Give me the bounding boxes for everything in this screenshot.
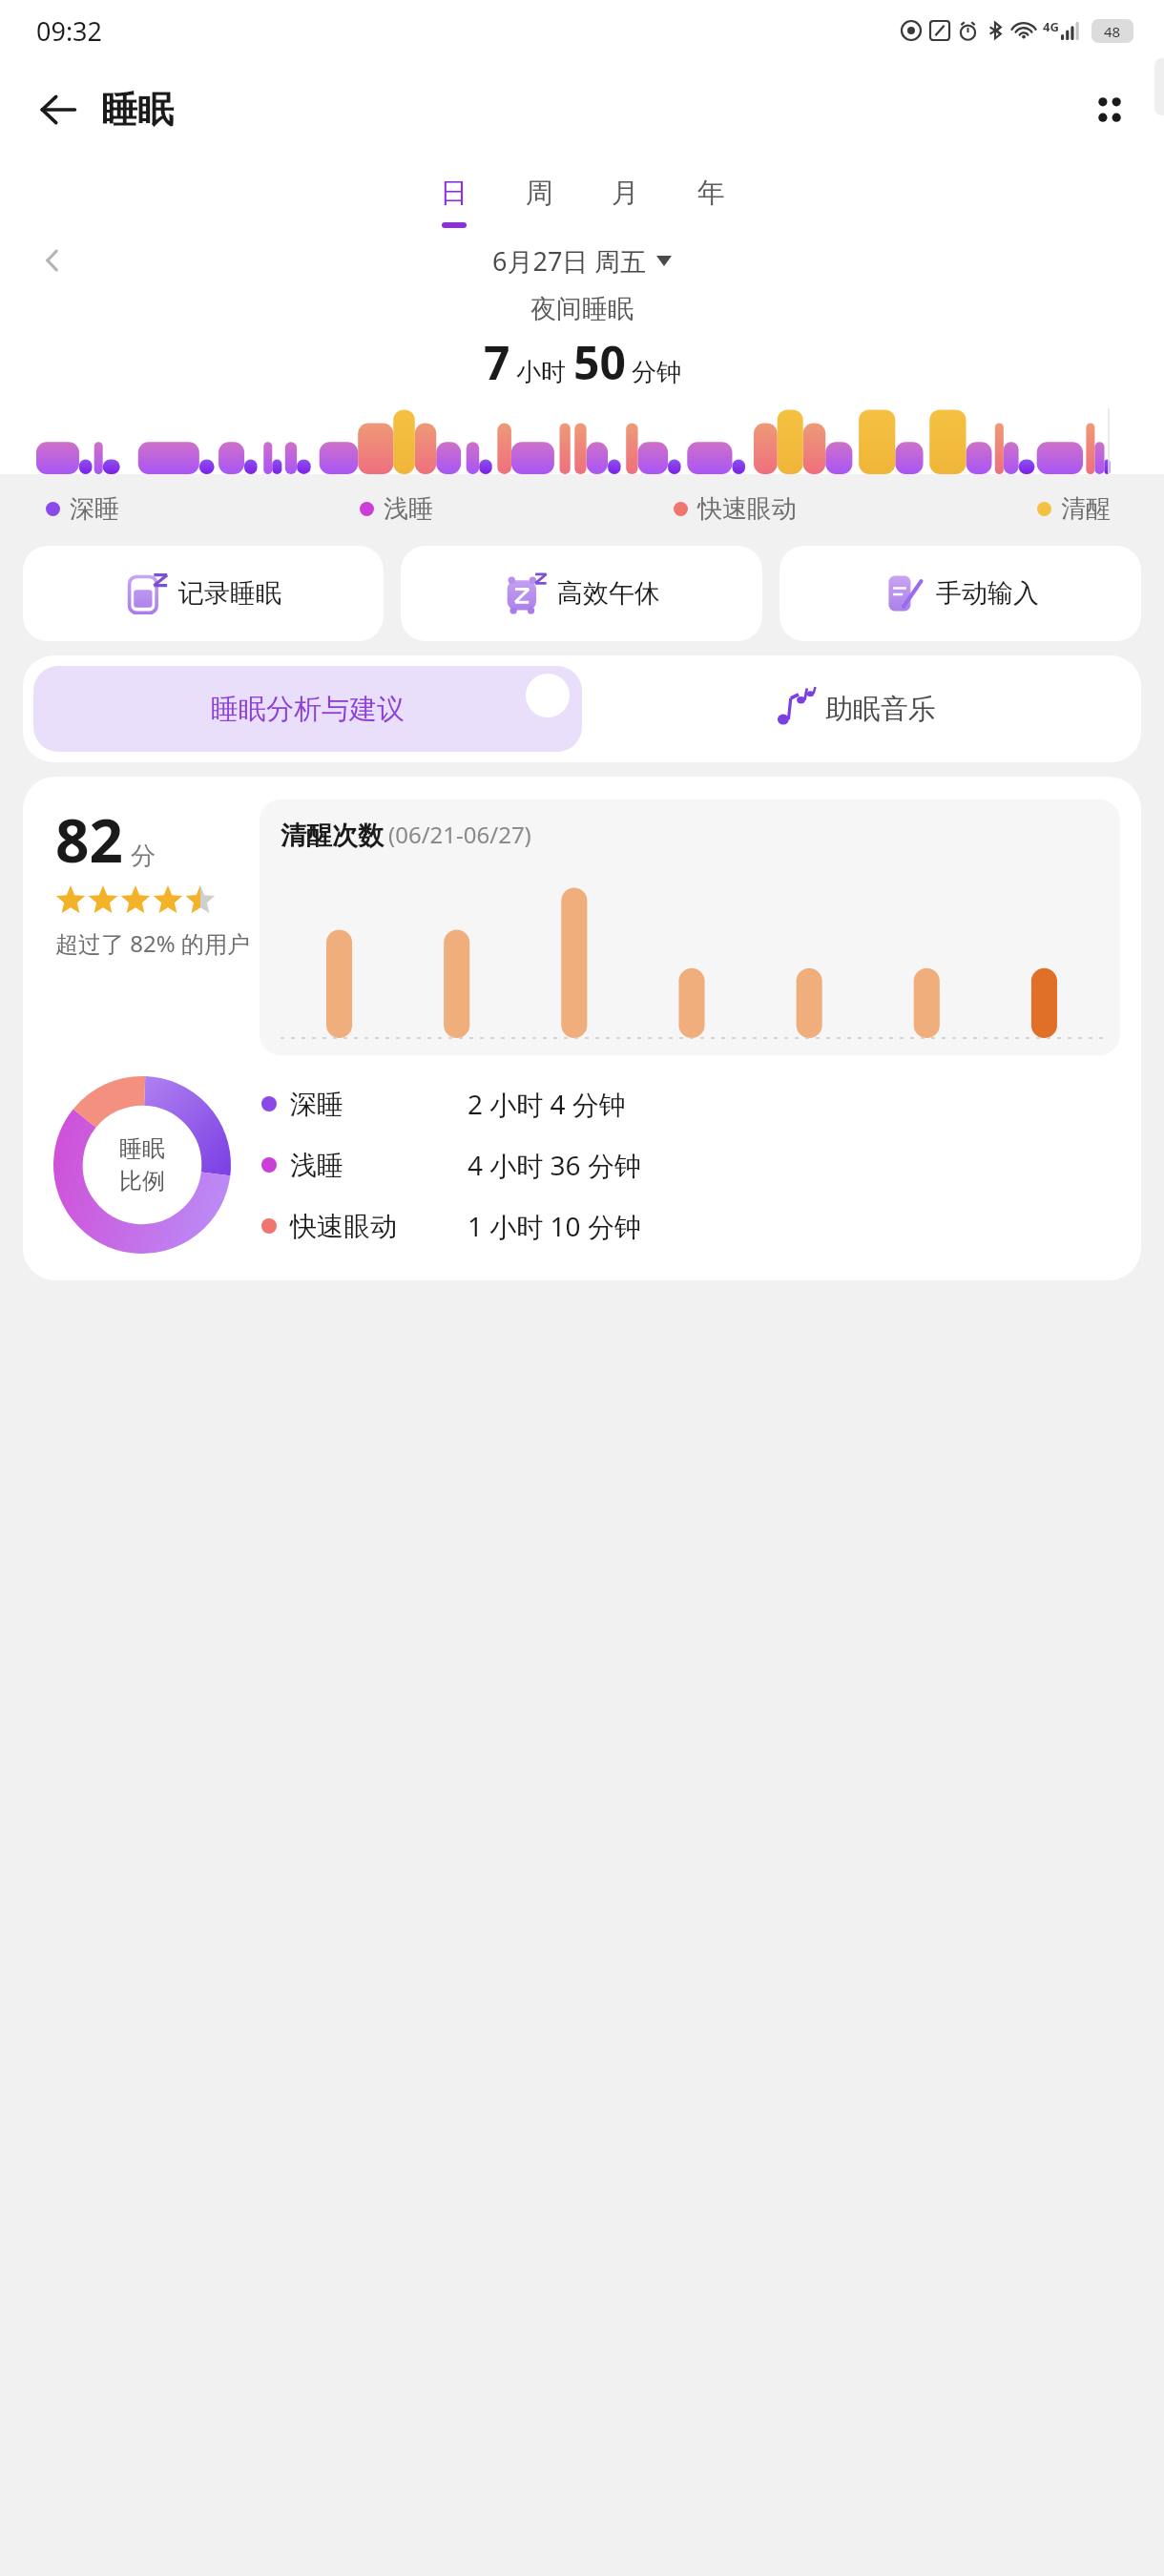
button[interactable]: 6月27日 周五: [492, 243, 672, 279]
button[interactable]: 月: [582, 176, 668, 222]
button[interactable]: 深睡: [261, 1086, 1141, 1122]
staticText: 浅睡: [384, 493, 433, 525]
staticText: 4G: [1043, 18, 1059, 35]
staticText: 2 小时 4 分钟: [468, 1086, 626, 1122]
button[interactable]: Scroll handle: [526, 674, 570, 717]
button[interactable]: 年: [668, 176, 754, 222]
staticText: 睡眠: [101, 87, 174, 133]
staticText: 记录睡眠: [178, 577, 281, 610]
button[interactable]: 深睡: [46, 493, 119, 525]
button[interactable]: More options: [1080, 81, 1137, 138]
staticText: 浅睡: [290, 1149, 468, 1182]
staticText: 周: [526, 176, 553, 211]
button[interactable]: 浅睡: [261, 1147, 1141, 1183]
button[interactable]: 周: [496, 176, 582, 222]
staticText: 年: [697, 176, 725, 211]
staticText: 睡眠: [119, 1134, 165, 1163]
staticText: 手动输入: [936, 577, 1039, 610]
staticText: 睡眠分析与建议: [211, 692, 405, 727]
button[interactable]: Previous day: [27, 235, 78, 286]
staticText: 82: [55, 800, 123, 880]
staticText: 分: [131, 841, 156, 872]
button[interactable]: 快速眼动: [261, 1208, 1141, 1244]
button[interactable]: Side panel: [1154, 58, 1164, 115]
staticText: 分钟: [632, 357, 681, 388]
button[interactable]: 记录睡眠: [23, 546, 384, 641]
staticText: 快速眼动: [290, 1210, 468, 1243]
staticText: 比例: [119, 1167, 165, 1195]
staticText: 日: [440, 176, 468, 211]
staticText: 深睡: [290, 1088, 468, 1121]
button[interactable]: 高效午休: [401, 546, 762, 641]
button[interactable]: 清醒: [1037, 493, 1111, 525]
staticText: 09:32: [36, 13, 103, 49]
staticText: 50: [573, 331, 626, 393]
button[interactable]: 手动输入: [779, 546, 1141, 641]
staticText: 月: [612, 176, 639, 211]
staticText: (06/21-06/27): [388, 819, 531, 850]
button[interactable]: 日: [410, 176, 496, 228]
staticText: 6月27日 周五: [492, 243, 647, 279]
staticText: 清醒次数: [281, 820, 384, 852]
staticText: 深睡: [70, 493, 119, 525]
staticText: 1 小时 10 分钟: [468, 1208, 641, 1244]
button[interactable]: 睡眠分析与建议: [33, 666, 582, 752]
staticText: 高效午休: [557, 577, 660, 610]
button[interactable]: 助眠音乐: [582, 666, 1131, 752]
button[interactable]: Back: [31, 82, 86, 137]
staticText: 7: [484, 331, 510, 393]
staticText: 4 小时 36 分钟: [468, 1147, 641, 1183]
staticText: 小时: [516, 357, 566, 388]
staticText: 超过了 82% 的用户: [55, 927, 250, 959]
staticText: 清醒: [1061, 493, 1111, 525]
button[interactable]: 快速眼动: [674, 493, 797, 525]
staticText: 助眠音乐: [825, 692, 936, 727]
staticText: 快速眼动: [697, 493, 797, 525]
button[interactable]: 浅睡: [360, 493, 433, 525]
staticText: 48: [1104, 22, 1121, 41]
staticText: 夜间睡眠: [530, 293, 634, 325]
